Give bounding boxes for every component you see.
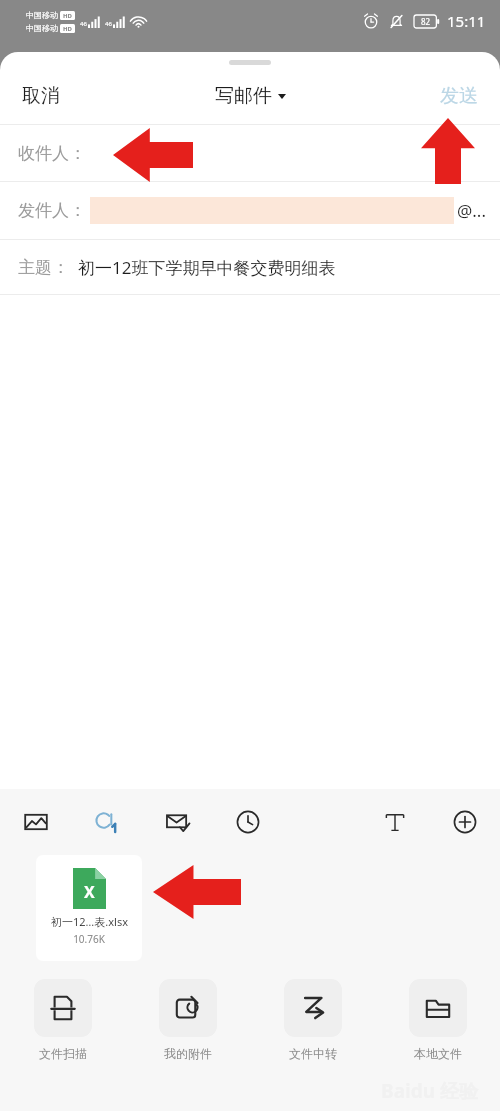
button[interactable]: 主题：: [0, 240, 500, 294]
staticText: HD: [63, 12, 72, 20]
button[interactable]: 我的附件: [125, 979, 250, 1061]
staticText: X: [84, 881, 95, 903]
button[interactable]: More options: [430, 801, 500, 843]
button[interactable]: Signature: [71, 801, 142, 843]
staticText: 写邮件: [215, 84, 272, 108]
staticText: 46: [80, 20, 87, 28]
button[interactable]: 取消: [6, 75, 76, 117]
button[interactable]: X: [36, 855, 142, 961]
staticText: 收件人：: [18, 143, 86, 164]
staticText: 发件人：: [18, 200, 86, 221]
button[interactable]: Insert image: [0, 801, 71, 843]
staticText: 文件中转: [289, 1046, 337, 1061]
staticText: 取消: [22, 84, 60, 108]
button[interactable]: 收件人：: [0, 125, 500, 181]
button[interactable]: Text format: [360, 801, 430, 843]
staticText: 82: [421, 16, 431, 27]
button[interactable]: 写邮件: [205, 77, 296, 115]
staticText: 本地文件: [414, 1046, 462, 1061]
staticText: 我的附件: [164, 1046, 212, 1061]
staticText: 初一12…表.xlsx: [51, 914, 128, 929]
button[interactable]: 本地文件: [375, 979, 500, 1061]
staticText: 主题：: [18, 257, 69, 278]
staticText: 文件扫描: [39, 1046, 87, 1061]
button[interactable]: 发送: [424, 75, 494, 117]
button[interactable]: 文件扫描: [0, 979, 125, 1061]
button[interactable]: Read receipt: [142, 801, 213, 843]
staticText: @...: [457, 199, 486, 222]
staticText: 46: [105, 20, 112, 28]
staticText: 15:11: [447, 11, 486, 31]
button[interactable]: 发件人：: [0, 182, 500, 239]
button[interactable]: 文件中转: [250, 979, 375, 1061]
staticText: 中国移动: [26, 10, 58, 20]
staticText: 10.76K: [73, 932, 105, 946]
staticText: HD: [63, 25, 72, 33]
staticText: 中国移动: [26, 23, 58, 33]
staticText: 发送: [440, 84, 478, 108]
staticText: 初一12班下学期早中餐交费明细表: [78, 256, 336, 279]
button[interactable]: Schedule send: [213, 801, 283, 843]
